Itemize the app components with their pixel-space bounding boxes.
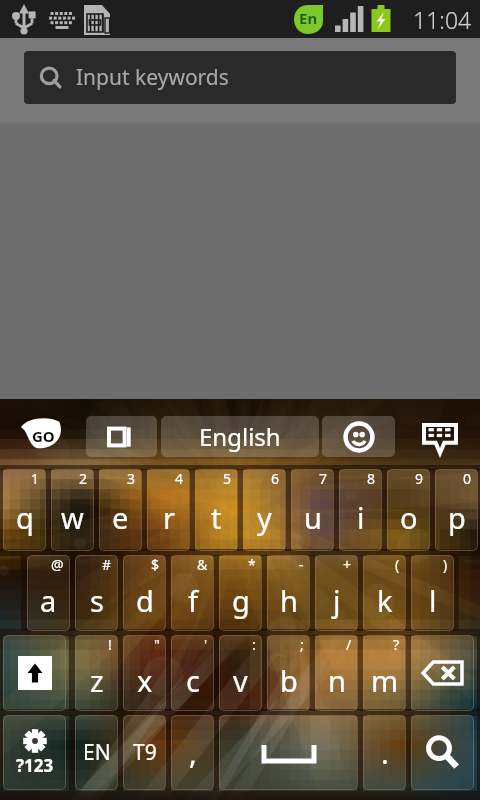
button[interactable]: ?123 (3, 715, 66, 790)
other: Backspace (421, 659, 465, 687)
staticText: 11:04 (413, 4, 472, 35)
staticText: , (189, 733, 197, 772)
other: Layout (107, 422, 137, 452)
other: Space (264, 745, 314, 761)
staticText: ( (395, 555, 400, 574)
staticText: $ (151, 555, 160, 574)
staticText: 2 (79, 469, 88, 488)
button[interactable]: EN (75, 715, 118, 790)
button[interactable]: & (171, 555, 214, 631)
staticText: 0 (463, 469, 472, 488)
staticText: ) (443, 555, 448, 574)
staticText: 8 (367, 469, 376, 488)
staticText: 5 (223, 469, 232, 488)
staticText: 6 (271, 469, 280, 488)
staticText: " (154, 635, 160, 654)
button[interactable]: 4 (147, 469, 190, 551)
staticText: e (112, 498, 129, 537)
staticText: @ (51, 555, 64, 574)
staticText: p (448, 498, 466, 537)
staticText: ' (204, 635, 208, 654)
button[interactable]: - (267, 555, 310, 631)
button[interactable]: ? (363, 635, 406, 711)
staticText: 4 (175, 469, 184, 488)
staticText: y (257, 498, 272, 537)
button[interactable]: ( (363, 555, 406, 631)
button[interactable]: Search (411, 715, 474, 790)
staticText: * (248, 555, 256, 574)
staticText: u (304, 498, 322, 537)
staticText: # (102, 555, 112, 574)
staticText: m (371, 661, 399, 700)
button[interactable]: Hide keyboard (420, 421, 460, 457)
button[interactable]: Emoji (322, 416, 395, 457)
staticText: c (186, 661, 200, 700)
button[interactable]: English (161, 416, 319, 457)
staticText: f (188, 581, 198, 620)
staticText: ?123 (16, 754, 54, 777)
other: Emoji (343, 421, 375, 453)
button[interactable]: ) (411, 555, 454, 631)
button[interactable]: Backspace (411, 635, 474, 711)
staticText: g (232, 581, 250, 620)
staticText: En (299, 8, 318, 28)
button[interactable]: Input keywords (24, 51, 456, 104)
button[interactable]: 8 (339, 469, 382, 551)
button[interactable]: 9 (387, 469, 430, 551)
staticText: r (163, 498, 175, 537)
staticText: . (381, 733, 389, 772)
button[interactable]: T9 (123, 715, 166, 790)
button[interactable]: * (219, 555, 262, 631)
button[interactable]: Layout (86, 416, 157, 457)
button[interactable]: . (363, 715, 406, 790)
staticText: v (233, 661, 248, 700)
button[interactable]: 6 (243, 469, 286, 551)
staticText: n (328, 661, 346, 700)
button[interactable]: 2 (51, 469, 94, 551)
staticText: z (90, 661, 104, 700)
staticText: ; (300, 635, 304, 654)
other: Shift (18, 656, 52, 690)
staticText: & (197, 555, 208, 574)
button[interactable]: + (315, 555, 358, 631)
staticText: d (136, 581, 154, 620)
staticText: h (280, 581, 298, 620)
staticText: t (211, 498, 222, 537)
staticText: English (199, 420, 281, 453)
staticText: b (280, 661, 298, 700)
button[interactable]: 7 (291, 469, 334, 551)
button[interactable]: Shift (3, 635, 66, 711)
button[interactable]: 5 (195, 469, 238, 551)
button[interactable]: 0 (435, 469, 478, 551)
button[interactable]: $ (123, 555, 166, 631)
staticText: 1 (31, 469, 40, 488)
button[interactable]: ' (171, 635, 214, 711)
staticText: 9 (415, 469, 424, 488)
staticText: + (343, 555, 352, 574)
staticText: w (61, 498, 84, 537)
staticText: ? (393, 635, 400, 654)
button[interactable]: : (219, 635, 262, 711)
button[interactable]: / (315, 635, 358, 711)
button[interactable]: , (171, 715, 214, 790)
button[interactable]: @ (27, 555, 70, 631)
staticText: 7 (319, 469, 328, 488)
button[interactable]: 3 (99, 469, 142, 551)
button[interactable]: # (75, 555, 118, 631)
staticText: o (400, 498, 418, 537)
staticText: GO (32, 426, 55, 446)
button[interactable]: Space (219, 715, 358, 790)
staticText: / (346, 635, 352, 654)
staticText: - (299, 555, 304, 574)
button[interactable]: 1 (3, 469, 46, 551)
staticText: : (252, 635, 256, 654)
button[interactable]: " (123, 635, 166, 711)
staticText: 3 (127, 469, 136, 488)
button[interactable]: ! (75, 635, 118, 711)
staticText: ! (108, 635, 112, 654)
staticText: q (16, 498, 34, 537)
staticText: T9 (133, 738, 157, 767)
staticText: Input keywords (76, 63, 229, 92)
staticText: s (90, 581, 104, 620)
button[interactable]: ; (267, 635, 310, 711)
